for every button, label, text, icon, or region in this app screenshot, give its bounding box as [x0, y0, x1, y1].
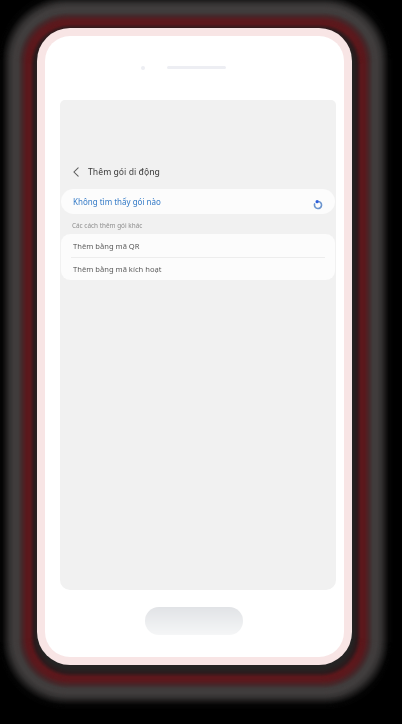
button[interactable]: Thêm bằng mã kích hoạt — [61, 258, 335, 280]
staticText: Thêm gói di động — [88, 166, 160, 178]
staticText: Thêm bằng mã kích hoạt — [73, 264, 162, 274]
button[interactable]: Back — [69, 161, 83, 182]
button[interactable]: Thêm bằng mã QR — [61, 234, 335, 257]
staticText: Không tìm thấy gói nào — [73, 196, 161, 207]
staticText: Các cách thêm gói khác — [72, 221, 143, 230]
button[interactable]: Không tìm thấy gói nào — [61, 189, 335, 214]
staticText: Thêm bằng mã QR — [73, 241, 140, 251]
